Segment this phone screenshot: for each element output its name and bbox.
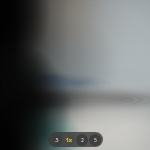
staticText: 2 bbox=[81, 137, 84, 144]
button[interactable]: Zoom 0.5x bbox=[50, 134, 62, 146]
button[interactable]: Zoom 5x bbox=[89, 134, 101, 146]
button[interactable]: Zoom 1x bbox=[63, 134, 75, 146]
staticText: 1x bbox=[66, 137, 72, 144]
staticText: .5 bbox=[54, 137, 59, 144]
button[interactable]: Zoom 2x bbox=[76, 134, 88, 146]
staticText: 5 bbox=[94, 137, 97, 144]
